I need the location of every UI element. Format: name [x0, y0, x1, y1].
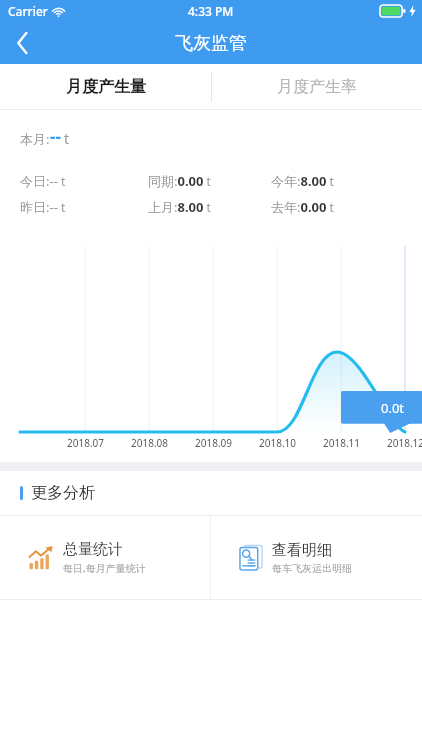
button[interactable]: 月度产生量 [0, 64, 211, 109]
staticText: 查看明细 [272, 541, 332, 560]
staticText: Carrier [8, 3, 48, 19]
staticText: 月度产生率 [277, 77, 357, 97]
button[interactable]: 查看明细 [211, 516, 422, 599]
staticText: 本月: [20, 130, 50, 148]
staticText: 2018.12 [387, 436, 422, 450]
button[interactable]: Back [0, 22, 44, 64]
staticText: 昨日:-- t [20, 198, 66, 216]
staticText: 0.0t [381, 399, 405, 417]
staticText: 更多分析 [31, 483, 95, 503]
staticText: 2018.11 [323, 436, 360, 450]
staticText: 月度产生量 [66, 77, 146, 97]
button[interactable]: 月度产生率 [211, 64, 422, 109]
staticText: 上月:8.00 t [148, 198, 211, 216]
staticText: 今年:8.00 t [271, 172, 334, 190]
staticText: 每日,每月产量统计 [63, 561, 146, 575]
staticText: 今日:-- t [20, 172, 66, 190]
staticText: 2018.09 [195, 436, 232, 450]
staticText: 总量统计 [63, 540, 123, 559]
staticText: 2018.08 [131, 436, 168, 450]
staticText: 2018.10 [259, 436, 296, 450]
staticText: 2018.07 [67, 436, 104, 450]
staticText: 飞灰监管 [175, 32, 247, 55]
staticText: t [64, 129, 70, 148]
staticText: 同期:0.00 t [148, 172, 211, 190]
staticText: -- [50, 125, 61, 148]
staticText: 4:33 PM [188, 3, 234, 19]
staticText: 去年:0.00 t [271, 198, 334, 216]
button[interactable]: 总量统计 [0, 516, 210, 599]
staticText: 每车飞灰运出明细 [272, 562, 352, 575]
